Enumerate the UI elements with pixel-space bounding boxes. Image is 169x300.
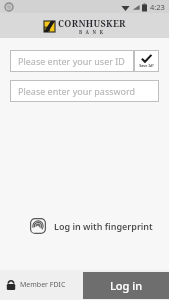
staticText: CORNHUSKER bbox=[58, 17, 126, 29]
button[interactable]: Please enter your user ID bbox=[10, 50, 134, 72]
staticText: 4:23 bbox=[150, 2, 165, 12]
staticText: Please enter your password bbox=[18, 85, 136, 97]
button[interactable]: Log in bbox=[83, 272, 169, 299]
staticText: Member FDIC bbox=[20, 280, 66, 290]
button[interactable]: Please enter your password bbox=[10, 80, 159, 102]
button[interactable]: Log in with fingerprint bbox=[28, 216, 155, 236]
staticText: Save Id? bbox=[139, 63, 154, 68]
staticText: B A N K bbox=[79, 29, 105, 35]
staticText: Log in bbox=[110, 278, 143, 293]
button[interactable]: Member FDIC bbox=[6, 279, 66, 291]
staticText: Log in with fingerprint bbox=[54, 220, 153, 232]
button[interactable]: Save Id bbox=[134, 50, 159, 72]
staticText: Please enter your user ID bbox=[18, 55, 125, 67]
